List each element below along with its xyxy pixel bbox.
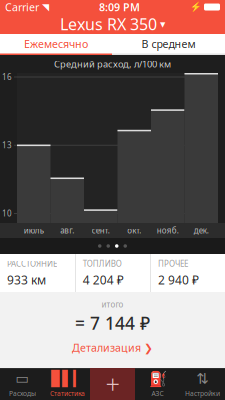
staticText: сент.: [92, 225, 110, 236]
button[interactable]: В среднем: [112, 34, 225, 55]
staticText: Статистика: [50, 389, 85, 398]
staticText: АЗС: [151, 389, 163, 398]
staticText: Lexus RX 350: [60, 13, 157, 35]
staticText: авг.: [60, 225, 74, 236]
button[interactable]: ПРОЧЕЕ: [151, 254, 225, 292]
staticText: ◥: [42, 2, 49, 12]
staticText: РАССТОЯНИЕ: [7, 258, 57, 269]
staticText: Ежемесячно: [24, 37, 88, 51]
staticText: 4 204 ₽: [83, 272, 124, 288]
button[interactable]: ▊▌▎: [45, 368, 90, 400]
staticText: = 7 144 ₽: [75, 312, 150, 335]
staticText: нояб.: [157, 225, 179, 236]
staticText: ▾: [160, 18, 165, 30]
staticText: ▊▌▎: [51, 370, 84, 387]
staticText: ⇅: [196, 370, 208, 387]
staticText: окт.: [127, 225, 141, 236]
button[interactable]: Add record: [90, 368, 135, 400]
staticText: ⛽: [148, 370, 166, 387]
button[interactable]: РАССТОЯНИЕ: [0, 254, 75, 292]
staticText: 2 940 ₽: [158, 272, 199, 288]
button[interactable]: Детализация ❯: [64, 337, 161, 355]
button[interactable]: Lexus RX 350: [52, 9, 173, 39]
button[interactable]: ⛽: [135, 368, 180, 400]
staticText: 13: [2, 140, 12, 150]
button[interactable]: Ежемесячно: [0, 34, 112, 55]
staticText: итого: [101, 299, 123, 310]
staticText: дек.: [194, 225, 209, 236]
staticText: +: [105, 367, 119, 400]
staticText: Carrier: [5, 0, 42, 14]
staticText: ПРОЧЕЕ: [158, 258, 188, 269]
staticText: Средний расход, л/100 км: [54, 58, 171, 70]
staticText: ТОПЛИВО: [83, 258, 122, 269]
button[interactable]: ⇅: [180, 368, 225, 400]
button[interactable]: ТОПЛИВО: [76, 254, 150, 292]
button[interactable]: ▭: [0, 368, 45, 400]
staticText: В среднем: [141, 37, 195, 51]
staticText: 16: [2, 72, 12, 82]
staticText: 933 км: [7, 272, 46, 288]
staticText: Настройки: [185, 389, 220, 398]
staticText: ▭: [15, 370, 29, 387]
staticText: ⚡: [190, 2, 202, 12]
staticText: Расходы: [9, 389, 36, 398]
staticText: июль: [24, 225, 44, 236]
staticText: 8:09 PM: [99, 0, 140, 14]
staticText: Детализация ❯: [72, 341, 153, 355]
staticText: 10: [2, 208, 12, 219]
